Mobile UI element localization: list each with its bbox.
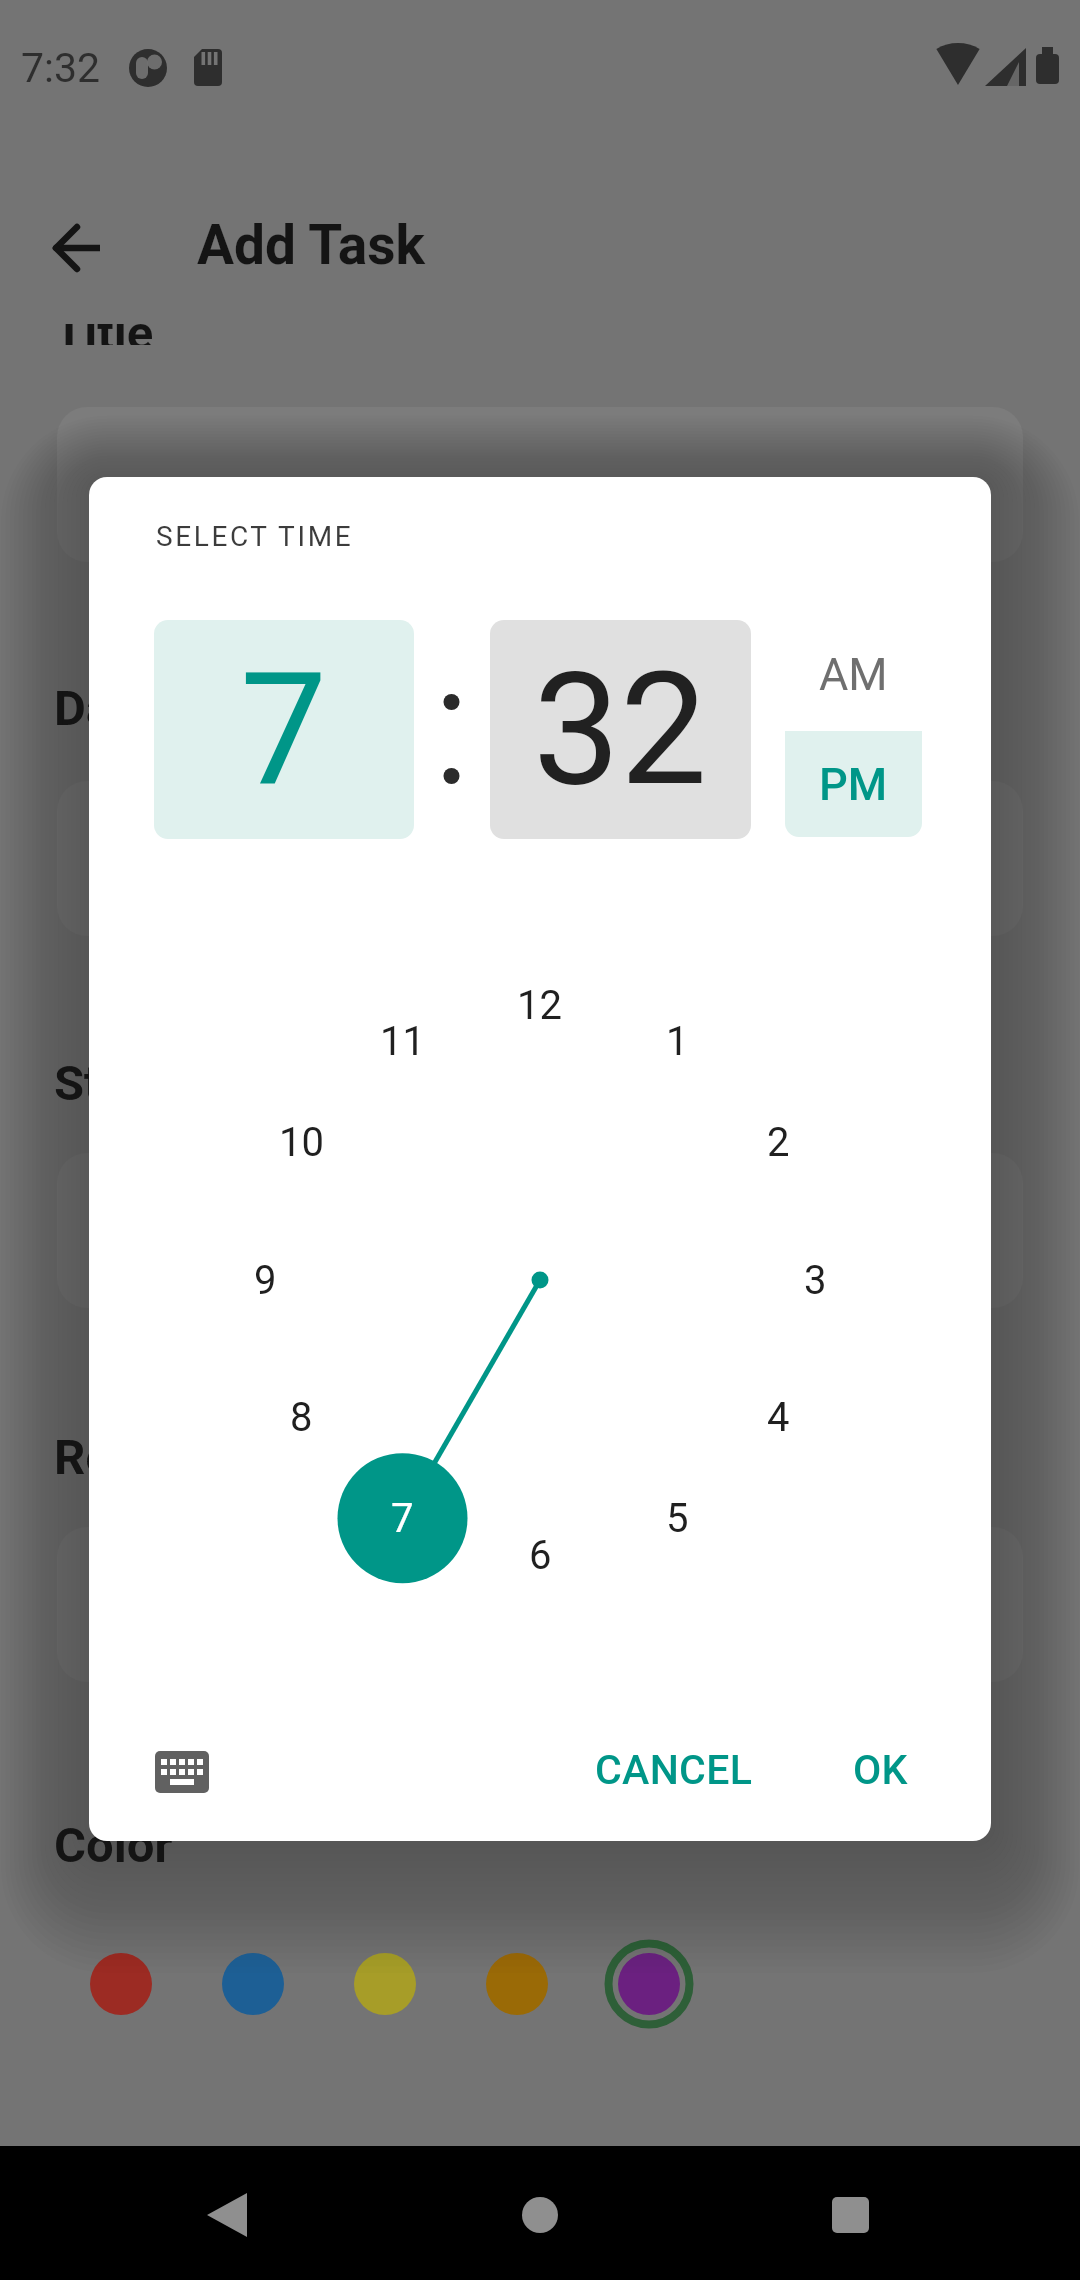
button[interactable] [57, 781, 1023, 936]
staticText: SELECT TIME [156, 520, 354, 553]
button[interactable]: 12 [489, 975, 589, 1035]
button[interactable] [354, 1953, 416, 2015]
button[interactable] [486, 1953, 548, 2015]
staticText: Title [54, 324, 154, 345]
staticText: 11 [380, 1018, 425, 1065]
button[interactable]: 8 [251, 1387, 351, 1447]
button[interactable]: 2 [728, 1112, 828, 1172]
staticText: 7 [391, 1495, 414, 1542]
staticText: AM [819, 648, 888, 701]
button[interactable]: 9 [215, 1250, 315, 1310]
button[interactable] [618, 1953, 680, 2015]
button[interactable]: OK [825, 1742, 935, 1798]
button[interactable] [54, 224, 102, 272]
staticText: 12 [517, 982, 562, 1029]
staticText: Reminder [54, 1429, 267, 1486]
button[interactable]: PM [785, 731, 922, 837]
button[interactable]: 10 [251, 1112, 351, 1172]
button[interactable] [90, 1953, 152, 2015]
staticText: 9 [254, 1257, 277, 1304]
button[interactable]: 7 [352, 1488, 452, 1548]
staticText: Date [54, 680, 156, 737]
button[interactable] [522, 2197, 558, 2233]
button[interactable]: 6 [490, 1525, 590, 1585]
staticText: Start Time [54, 1055, 286, 1112]
button[interactable]: 5 [627, 1488, 727, 1548]
staticText: 10 [279, 1119, 324, 1166]
staticText: 6 [529, 1532, 552, 1579]
button[interactable] [57, 1527, 1023, 1682]
button[interactable]: 1 [627, 1011, 727, 1071]
staticText: PM [819, 758, 888, 811]
staticText: 7 [240, 639, 328, 821]
staticText: 2 [767, 1119, 790, 1166]
staticText: Add Task [197, 213, 425, 277]
staticText: 7:32 [21, 44, 101, 92]
button[interactable] [222, 1953, 284, 2015]
button[interactable] [207, 2193, 247, 2237]
staticText: 32 [533, 639, 708, 821]
staticText: CANCEL [595, 1746, 753, 1794]
staticText: 3 [804, 1257, 827, 1304]
button[interactable]: 32 [490, 620, 751, 839]
staticText: 5 [666, 1495, 689, 1542]
staticText: 1 [666, 1018, 689, 1065]
staticText: Color [54, 1817, 173, 1874]
button[interactable]: CANCEL [564, 1742, 784, 1798]
button[interactable] [155, 1751, 209, 1793]
button[interactable]: 4 [728, 1387, 828, 1447]
button[interactable] [57, 1153, 1023, 1308]
staticText: 4 [767, 1394, 790, 1441]
button[interactable] [832, 2197, 869, 2233]
staticText: 8 [290, 1394, 313, 1441]
button[interactable] [57, 407, 1023, 562]
button[interactable]: 3 [765, 1250, 865, 1310]
button[interactable]: AM [785, 625, 922, 724]
staticText: OK [853, 1746, 908, 1794]
button[interactable]: 7 [154, 620, 414, 839]
button[interactable]: 11 [352, 1011, 452, 1071]
